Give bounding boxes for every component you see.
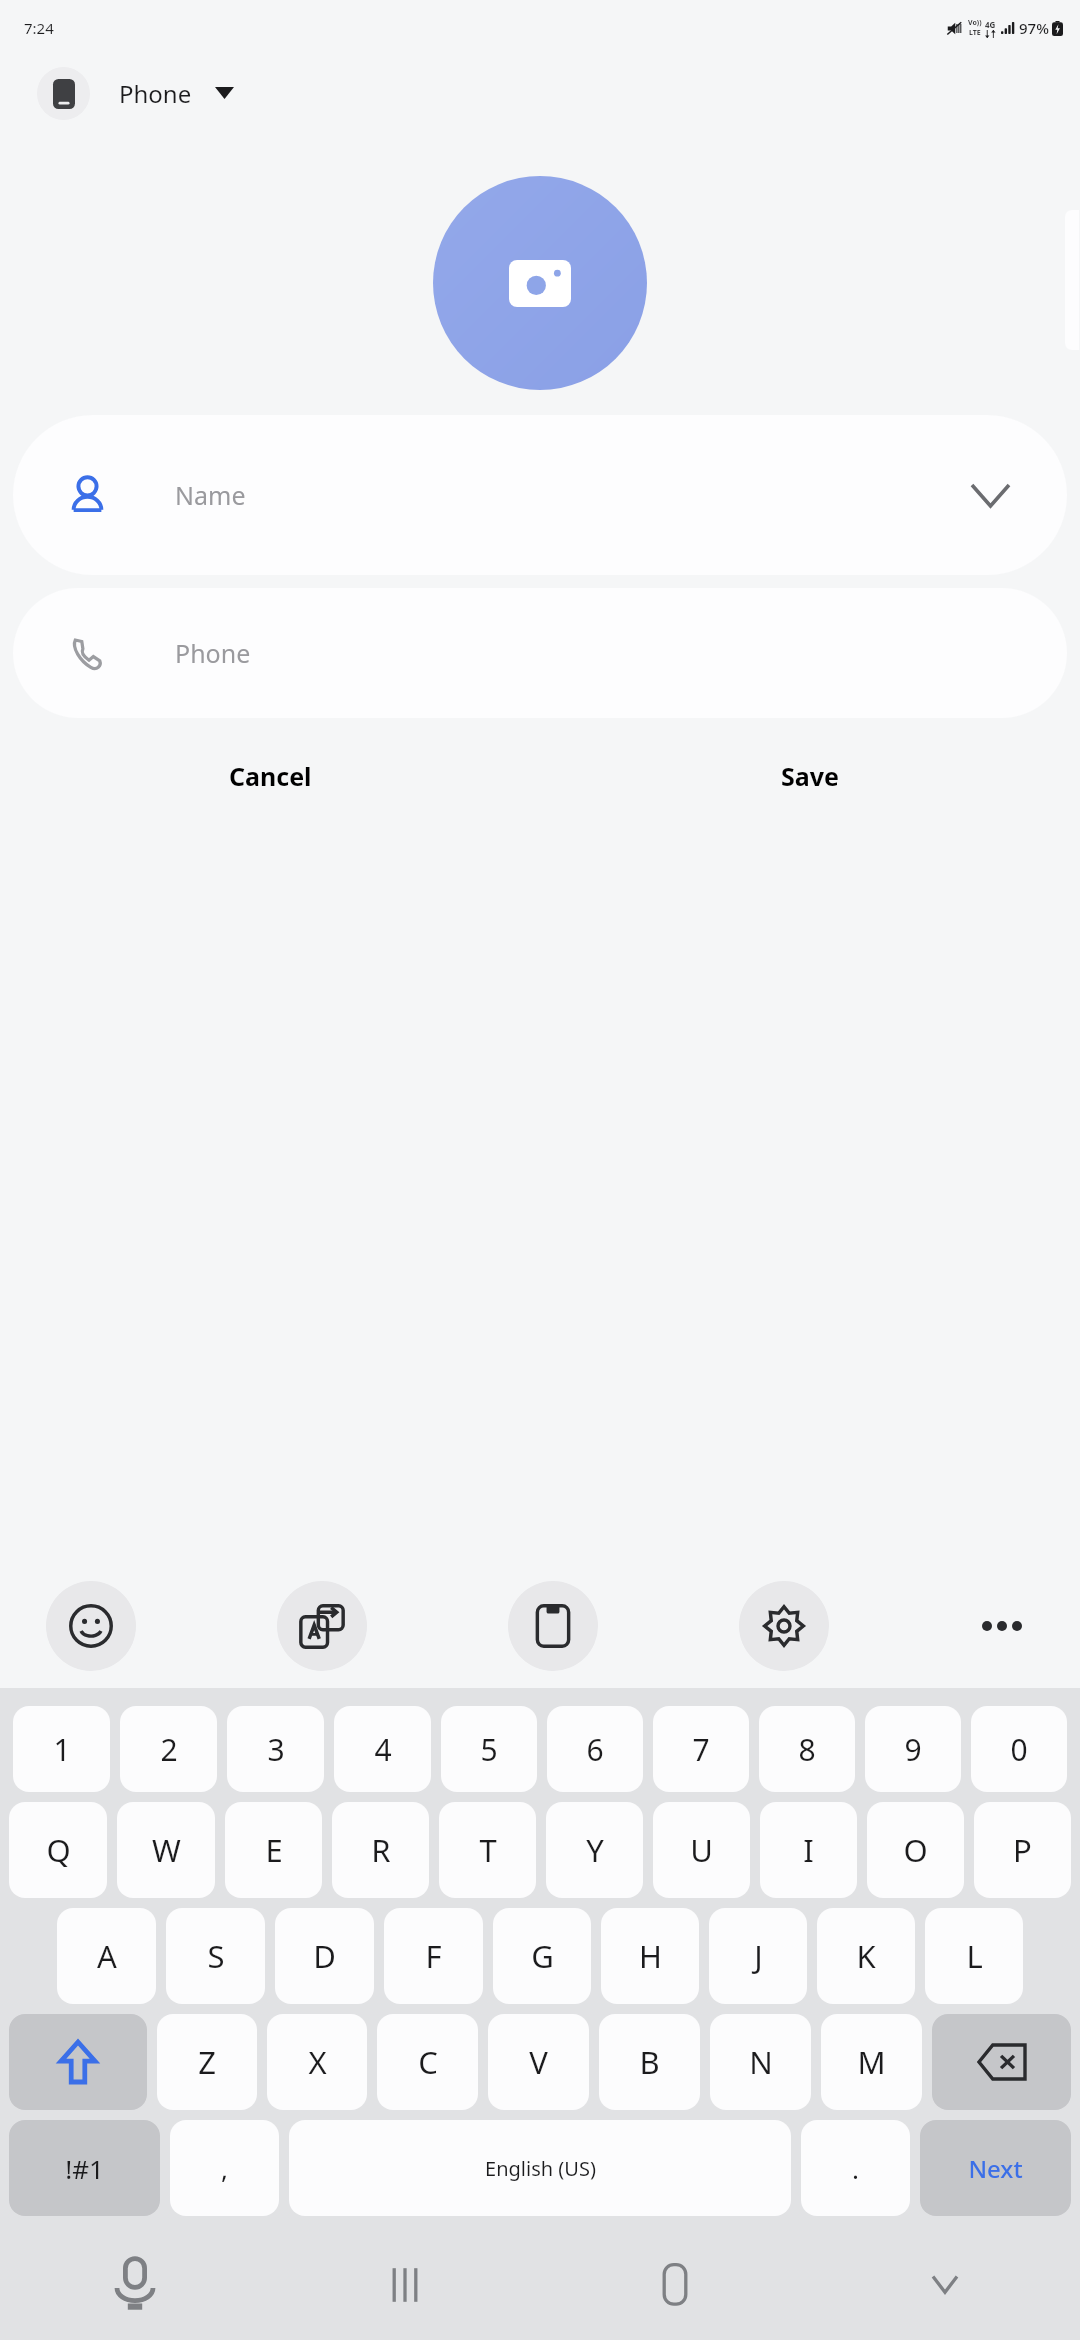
staticText: X xyxy=(308,2041,327,2083)
button[interactable]: 6 xyxy=(547,1706,643,1792)
button[interactable]: W xyxy=(117,1802,215,1898)
staticText: !#1 xyxy=(65,2151,104,2186)
staticText: Z xyxy=(198,2041,216,2083)
button[interactable]: Backspace xyxy=(932,2014,1071,2110)
button[interactable]: Translate xyxy=(277,1581,367,1671)
button[interactable]: M xyxy=(821,2014,922,2110)
button[interactable]: Add contact photo xyxy=(433,176,647,390)
staticText: O xyxy=(903,1829,928,1871)
staticText: 1 xyxy=(53,1729,71,1770)
staticText: F xyxy=(425,1935,442,1977)
staticText: M xyxy=(857,2041,886,2083)
button[interactable]: Name xyxy=(13,415,1067,575)
button[interactable]: 4 xyxy=(334,1706,431,1792)
staticText: S xyxy=(207,1935,225,1977)
staticText: K xyxy=(856,1935,876,1977)
button[interactable]: V xyxy=(488,2014,589,2110)
button[interactable]: I xyxy=(760,1802,857,1898)
button[interactable]: Next xyxy=(920,2120,1071,2216)
button[interactable]: Recents xyxy=(270,2230,540,2340)
button[interactable]: 9 xyxy=(865,1706,961,1792)
staticText: 6 xyxy=(586,1729,604,1770)
button[interactable]: 2 xyxy=(120,1706,217,1792)
button[interactable]: B xyxy=(599,2014,700,2110)
button[interactable]: X xyxy=(267,2014,367,2110)
staticText: Phone xyxy=(175,636,251,670)
button[interactable]: 0 xyxy=(971,1706,1067,1792)
button[interactable]: R xyxy=(332,1802,429,1898)
button[interactable]: Save xyxy=(540,741,1080,811)
button[interactable]: 1 xyxy=(13,1706,110,1792)
button[interactable]: . xyxy=(801,2120,910,2216)
button[interactable]: A xyxy=(57,1908,156,2004)
button[interactable]: O xyxy=(867,1802,964,1898)
staticText: D xyxy=(313,1935,336,1977)
staticText: R xyxy=(371,1829,391,1871)
staticText: N xyxy=(749,2041,773,2083)
button[interactable]: Phone xyxy=(13,588,1067,718)
button[interactable]: Y xyxy=(546,1802,643,1898)
staticText: Y xyxy=(586,1829,604,1871)
staticText: LTE xyxy=(969,28,981,38)
button[interactable]: L xyxy=(925,1908,1023,2004)
staticText: B xyxy=(639,2041,660,2083)
button[interactable]: 3 xyxy=(227,1706,324,1792)
staticText: Q xyxy=(46,1829,71,1871)
staticText: Vo)) xyxy=(968,18,982,28)
staticText: Phone xyxy=(119,77,192,110)
button[interactable]: Voice input xyxy=(0,2230,270,2340)
button[interactable]: H xyxy=(601,1908,699,2004)
staticText: I xyxy=(803,1829,814,1871)
staticText: 97% xyxy=(1019,18,1049,38)
staticText: Name xyxy=(175,478,246,512)
button[interactable]: Settings xyxy=(739,1581,829,1671)
button[interactable]: K xyxy=(817,1908,915,2004)
button[interactable]: Q xyxy=(9,1802,107,1898)
staticText: J xyxy=(754,1935,763,1977)
staticText: A xyxy=(97,1935,117,1977)
button[interactable]: D xyxy=(275,1908,374,2004)
button[interactable]: N xyxy=(710,2014,811,2110)
button[interactable]: J xyxy=(709,1908,807,2004)
button[interactable]: English (US) xyxy=(289,2120,791,2216)
button[interactable]: Cancel xyxy=(0,741,540,811)
button[interactable]: F xyxy=(384,1908,483,2004)
button[interactable]: Z xyxy=(157,2014,257,2110)
button[interactable]: Emoji xyxy=(46,1581,136,1671)
button[interactable]: , xyxy=(170,2120,279,2216)
staticText: , xyxy=(221,2151,228,2186)
staticText: 8 xyxy=(798,1729,816,1770)
staticText: G xyxy=(531,1935,554,1977)
staticText: 2 xyxy=(160,1729,178,1770)
button[interactable]: 7 xyxy=(653,1706,749,1792)
staticText: English (US) xyxy=(485,2155,596,2182)
staticText: Save xyxy=(781,759,839,793)
staticText: 7:24 xyxy=(24,18,54,38)
button[interactable]: T xyxy=(439,1802,536,1898)
staticText: P xyxy=(1013,1829,1032,1871)
button[interactable]: Shift xyxy=(9,2014,147,2110)
staticText: 0 xyxy=(1010,1729,1028,1770)
button[interactable]: !#1 xyxy=(9,2120,160,2216)
staticText: E xyxy=(265,1829,283,1871)
button[interactable]: Hide keyboard xyxy=(810,2230,1080,2340)
staticText: V xyxy=(529,2041,548,2083)
staticText: . xyxy=(852,2151,859,2186)
button[interactable]: U xyxy=(653,1802,750,1898)
button[interactable]: Phone xyxy=(0,56,1080,130)
staticText: U xyxy=(690,1829,713,1871)
button[interactable]: 5 xyxy=(441,1706,537,1792)
staticText: Cancel xyxy=(229,759,312,793)
staticText: 9 xyxy=(904,1729,922,1770)
button[interactable]: Clipboard xyxy=(508,1581,598,1671)
button[interactable]: P xyxy=(974,1802,1071,1898)
button[interactable]: G xyxy=(493,1908,591,2004)
staticText: T xyxy=(479,1829,497,1871)
button[interactable]: More options xyxy=(970,1594,1034,1658)
button[interactable]: C xyxy=(377,2014,478,2110)
button[interactable]: 8 xyxy=(759,1706,855,1792)
button[interactable]: Home xyxy=(540,2230,810,2340)
button[interactable]: E xyxy=(225,1802,322,1898)
button[interactable]: S xyxy=(166,1908,265,2004)
staticText: H xyxy=(639,1935,662,1977)
